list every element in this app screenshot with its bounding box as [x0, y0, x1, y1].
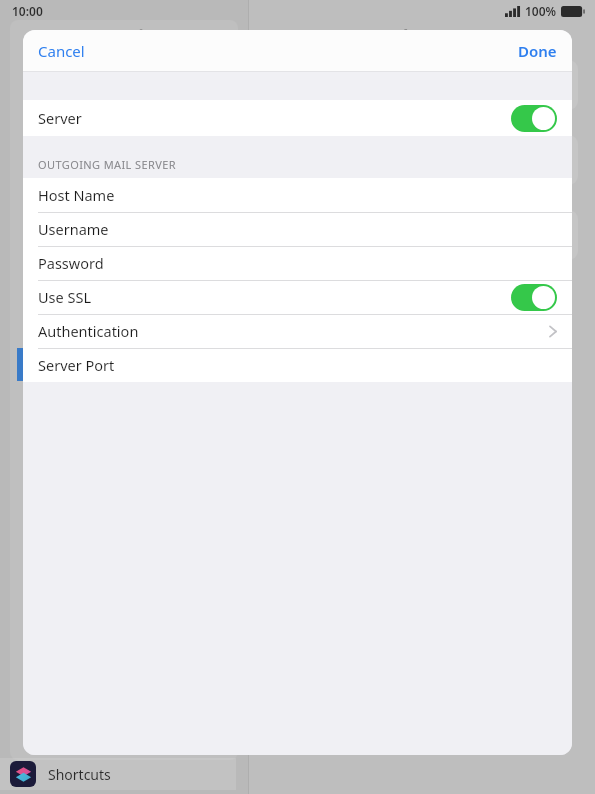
- staticText: OUTGOING MAIL SERVER: [38, 157, 176, 172]
- staticText: Accounts: [400, 24, 476, 47]
- button[interactable]: Server: [23, 100, 572, 136]
- button[interactable]: Use SSL: [23, 280, 572, 314]
- button[interactable]: Shortcuts: [0, 758, 236, 790]
- staticText: Authentication: [38, 321, 139, 341]
- staticText: Settings: [100, 24, 178, 50]
- other: Open Authentication: [549, 325, 557, 338]
- button[interactable]: Username: [23, 212, 572, 246]
- button[interactable]: Authentication: [23, 314, 572, 348]
- staticText: Done: [518, 41, 557, 61]
- button[interactable]: Toggle on: [511, 284, 557, 311]
- button[interactable]: Password: [23, 246, 572, 280]
- staticText: Shortcuts: [48, 765, 111, 784]
- staticText: 10:00: [12, 3, 43, 19]
- staticText: Password: [38, 253, 104, 273]
- staticText: Host Name: [38, 185, 115, 205]
- staticText: Username: [38, 219, 109, 239]
- staticText: Server Port: [38, 355, 115, 375]
- button[interactable]: Server Port: [23, 348, 572, 382]
- button[interactable]: Done: [503, 30, 572, 72]
- staticText: Cancel: [38, 41, 85, 61]
- button[interactable]: Toggle on: [511, 105, 557, 132]
- staticText: 100%: [525, 3, 557, 19]
- staticText: Server: [38, 108, 82, 128]
- button[interactable]: Cancel: [23, 30, 100, 72]
- staticText: Use SSL: [38, 287, 92, 307]
- button[interactable]: Host Name: [23, 178, 572, 212]
